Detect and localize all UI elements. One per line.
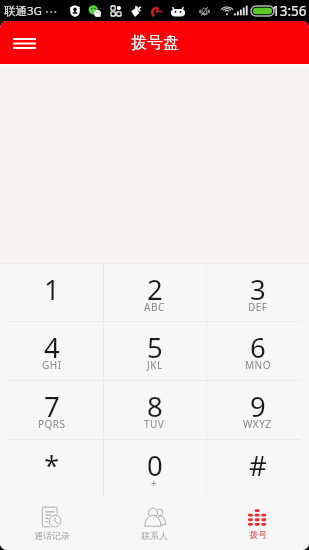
staticText: 2 bbox=[147, 271, 163, 308]
staticText: 联系人 bbox=[141, 530, 168, 541]
staticText: 通话记录 bbox=[34, 530, 70, 541]
button[interactable]: # bbox=[206, 440, 309, 498]
staticText: MNO bbox=[245, 358, 271, 372]
button[interactable]: * bbox=[0, 440, 103, 498]
button[interactable]: 8 bbox=[103, 381, 206, 439]
staticText: 联通3G bbox=[4, 3, 42, 19]
button[interactable]: 7 bbox=[0, 381, 103, 439]
staticText: + bbox=[151, 476, 158, 490]
staticText: GHI bbox=[42, 358, 62, 372]
button[interactable]: 4 bbox=[0, 322, 103, 380]
staticText: PQRS bbox=[38, 417, 66, 431]
staticText: 9 bbox=[250, 388, 266, 425]
button[interactable]: 2 bbox=[103, 264, 206, 321]
staticText: 6 bbox=[250, 329, 266, 366]
staticText: WXYZ bbox=[243, 417, 272, 431]
button[interactable]: 联系人 bbox=[103, 498, 206, 550]
button[interactable]: 9 bbox=[206, 381, 309, 439]
button[interactable]: 6 bbox=[206, 322, 309, 380]
staticText: 4 bbox=[44, 329, 60, 366]
staticText: * bbox=[44, 447, 60, 484]
button[interactable]: 通话记录 bbox=[0, 498, 103, 550]
staticText: DEF bbox=[248, 300, 268, 314]
staticText: 0 bbox=[147, 447, 163, 484]
staticText: TUV bbox=[144, 417, 165, 431]
button[interactable]: Open navigation menu bbox=[4, 23, 44, 63]
staticText: 3 bbox=[250, 271, 266, 308]
button[interactable]: 拨号 bbox=[206, 498, 309, 550]
button[interactable]: 0 bbox=[103, 440, 206, 498]
staticText: 13:56 bbox=[272, 2, 307, 20]
staticText: # bbox=[249, 447, 267, 484]
staticText: 8 bbox=[147, 388, 163, 425]
staticText: JKL bbox=[147, 358, 163, 372]
staticText: 5 bbox=[147, 329, 163, 366]
staticText: 拨号盘 bbox=[131, 33, 179, 53]
button[interactable]: 5 bbox=[103, 322, 206, 380]
staticText: ABC bbox=[144, 300, 165, 314]
staticText: 7 bbox=[44, 388, 60, 425]
staticText: 拨号 bbox=[249, 529, 267, 540]
button[interactable]: 3 bbox=[206, 264, 309, 321]
button[interactable]: 1 bbox=[0, 264, 103, 321]
staticText: 1 bbox=[44, 271, 60, 308]
